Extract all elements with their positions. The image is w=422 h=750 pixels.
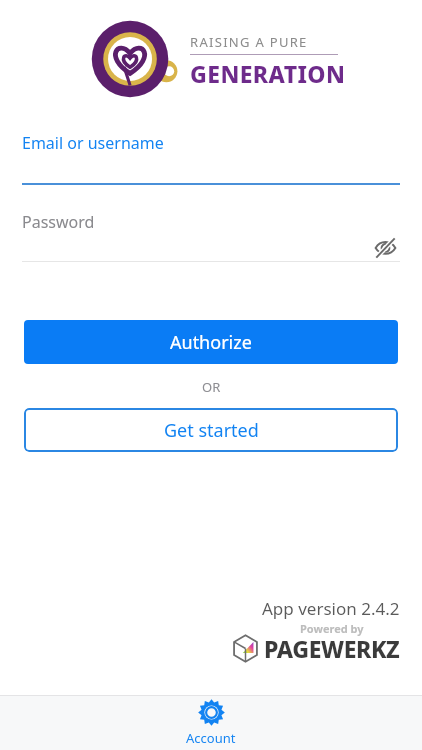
staticText: PAGEWERKZ xyxy=(264,633,400,664)
staticText: Password xyxy=(22,211,95,233)
staticText: GENERATION xyxy=(190,58,346,89)
staticText: Powered by xyxy=(300,621,364,636)
staticText: Account xyxy=(186,729,236,747)
button[interactable]: Password xyxy=(22,211,400,262)
staticText: Get started xyxy=(164,418,259,443)
staticText: OR xyxy=(202,378,221,396)
button[interactable]: Get started xyxy=(24,408,398,452)
button[interactable]: Email or username xyxy=(22,132,400,185)
staticText: Authorize xyxy=(170,330,252,355)
button[interactable]: Show password xyxy=(370,233,400,261)
staticText: App version 2.4.2 xyxy=(262,597,400,620)
button[interactable]: Account xyxy=(151,695,271,750)
staticText: RAISING A PURE xyxy=(190,33,308,51)
staticText: Email or username xyxy=(22,132,164,154)
button[interactable]: Authorize xyxy=(24,320,398,364)
